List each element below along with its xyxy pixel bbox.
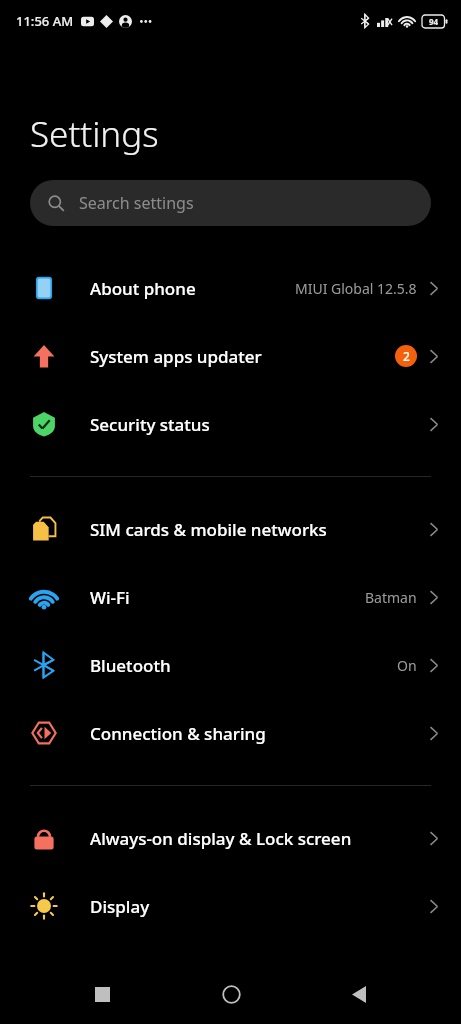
button[interactable]: Back	[333, 968, 385, 1020]
button[interactable]: Wi-Fi	[0, 563, 461, 631]
staticText: Settings	[30, 110, 159, 158]
button[interactable]: Bluetooth	[0, 631, 461, 699]
button[interactable]: Home	[205, 968, 257, 1020]
staticText: 2	[403, 348, 410, 364]
staticText: Display	[90, 895, 419, 918]
button[interactable]: Search settings	[30, 180, 431, 226]
staticText: SIM cards & mobile networks	[90, 518, 419, 541]
staticText: About phone	[90, 277, 285, 300]
button[interactable]: Always-on display & Lock screen	[0, 804, 461, 872]
staticText: Search settings	[79, 192, 194, 214]
staticText: Always-on display & Lock screen	[90, 827, 419, 850]
staticText: Wi-Fi	[90, 586, 355, 609]
staticText: Batman	[365, 588, 417, 607]
staticText: On	[397, 656, 417, 675]
staticText: Connection & sharing	[90, 722, 419, 745]
button[interactable]: Display	[0, 872, 461, 940]
button[interactable]: System apps updater	[0, 322, 461, 390]
staticText: System apps updater	[90, 345, 385, 368]
button[interactable]: Connection & sharing	[0, 699, 461, 767]
button[interactable]: Security status	[0, 390, 461, 458]
staticText: 94	[429, 16, 439, 27]
button[interactable]: SIM cards & mobile networks	[0, 495, 461, 563]
button[interactable]: Recent apps	[76, 968, 128, 1020]
button[interactable]: About phone	[0, 254, 461, 322]
staticText: Security status	[90, 413, 419, 436]
staticText: Bluetooth	[90, 654, 387, 677]
staticText: 11:56 AM	[16, 12, 74, 30]
staticText: MIUI Global 12.5.8	[295, 279, 417, 298]
